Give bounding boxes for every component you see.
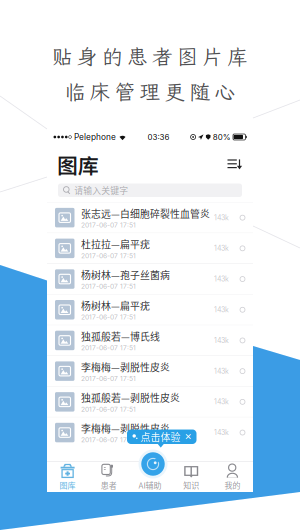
staticText: 80% — [213, 132, 231, 142]
staticText: 143k — [214, 336, 229, 345]
button[interactable]: 杨树林—扁平疣 — [47, 295, 253, 325]
button[interactable]: 独孤般若—剥脱性皮炎 — [47, 387, 253, 417]
staticText: 点击体验 — [140, 430, 180, 444]
staticText: 杜拉拉—扁平疣 — [81, 237, 150, 251]
staticText: 杨树林—扁平疣 — [81, 298, 150, 313]
button[interactable]: 我的 — [212, 460, 253, 494]
staticText: 独孤般若—剥脱性皮炎 — [81, 390, 180, 405]
staticText: 03:36 — [148, 132, 170, 142]
staticText: ✕ — [184, 432, 191, 442]
staticText: 2017-06-07 17:51 — [81, 313, 136, 321]
staticText: 杨树林—孢子丝菌病 — [81, 268, 170, 282]
staticText: 143k — [214, 367, 229, 375]
staticText: 143k — [214, 244, 229, 253]
staticText: 2017-06-07 17:51 — [81, 344, 136, 352]
button[interactable]: Sort — [226, 157, 244, 172]
button[interactable]: 知识 — [171, 460, 212, 494]
button[interactable]: 杜拉拉—扁平疣 — [47, 233, 253, 263]
staticText: 143k — [214, 398, 229, 406]
staticText: 张志远—白细胞碎裂性血管炎 — [81, 206, 210, 220]
button[interactable]: 独孤般若—博氏线 — [47, 325, 253, 355]
staticText: 143k — [214, 428, 229, 437]
staticText: 患者 — [101, 479, 117, 491]
staticText: 李梅梅—剥脱性皮炎 — [81, 360, 170, 374]
staticText: 李梅梅—剥脱性皮炎 — [81, 421, 170, 435]
button[interactable]: 张志远—白细胞碎裂性血管炎 — [47, 203, 253, 233]
button[interactable]: AI辅助 — [129, 460, 171, 494]
staticText: 2017-06-07 17:51 — [81, 221, 136, 229]
staticText: 临 床 管 理 更 随 心 — [64, 78, 235, 105]
staticText: 143k — [214, 275, 229, 283]
staticText: 2017-06-07 17:51 — [81, 405, 136, 413]
staticText: 2017-06-07 17:51 — [81, 374, 136, 383]
button[interactable]: 点击体验 — [127, 429, 196, 448]
staticText: 2017-06-07 17:51 — [81, 252, 136, 260]
staticText: 请输入关键字 — [74, 184, 128, 197]
staticText: 143k — [214, 213, 229, 222]
button[interactable]: 图库 — [47, 460, 88, 494]
button[interactable]: 杨树林—孢子丝菌病 — [47, 264, 253, 294]
staticText: 贴 身 的 患 者 图 片 库 — [52, 43, 248, 70]
button[interactable]: 李梅梅—剥脱性皮炎 — [47, 417, 253, 448]
staticText: 我的 — [224, 479, 240, 491]
staticText: 143k — [214, 306, 229, 314]
button[interactable]: 李梅梅—剥脱性皮炎 — [47, 356, 253, 386]
staticText: 知识 — [183, 479, 199, 491]
staticText: 图库 — [60, 479, 76, 491]
button[interactable]: 患者 — [88, 460, 129, 494]
staticText: 2017-06-07 17:51 — [81, 436, 136, 444]
staticText: 2017-06-07 17:51 — [81, 282, 136, 290]
staticText: Pelephone — [74, 132, 116, 142]
staticText: 独孤般若—博氏线 — [81, 329, 160, 343]
staticText: 图库 — [57, 149, 99, 179]
staticText: AI辅助 — [138, 479, 161, 491]
